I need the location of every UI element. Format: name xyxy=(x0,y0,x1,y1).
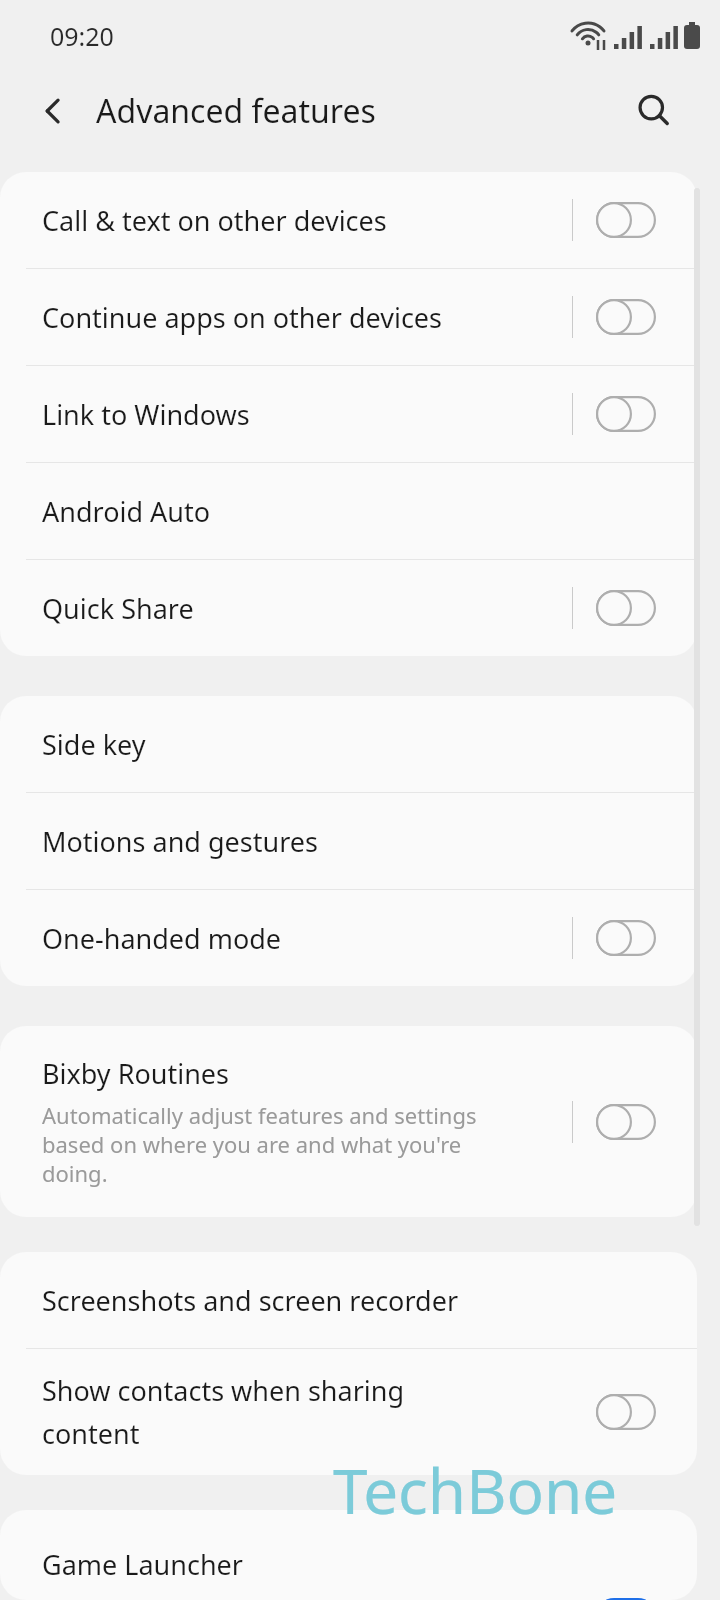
button[interactable]: Continue apps on other devices xyxy=(0,269,697,365)
button[interactable]: Toggle xyxy=(596,590,656,626)
button[interactable]: Game Launcher xyxy=(0,1510,697,1600)
staticText: Motions and gestures xyxy=(42,823,318,860)
button[interactable]: Quick Share xyxy=(0,560,697,656)
staticText: Quick Share xyxy=(42,590,194,627)
staticText: Link to Windows xyxy=(42,396,250,433)
staticText: content xyxy=(42,1415,140,1452)
button[interactable]: Link to Windows xyxy=(0,366,697,462)
button[interactable]: Bixby Routines xyxy=(0,1026,697,1217)
staticText: 09:20 xyxy=(50,19,114,53)
button[interactable]: Show contacts when sharing xyxy=(0,1349,697,1475)
button[interactable]: Motions and gestures xyxy=(0,793,697,889)
staticText: Bixby Routines xyxy=(42,1055,230,1092)
button[interactable]: Screenshots and screen recorder xyxy=(0,1252,697,1348)
staticText: Call & text on other devices xyxy=(42,202,387,239)
button[interactable]: Toggle xyxy=(596,202,656,238)
staticText: One-handed mode xyxy=(42,920,282,957)
staticText: Screenshots and screen recorder xyxy=(42,1282,459,1319)
staticText: Automatically adjust features and settin… xyxy=(42,1100,512,1188)
button[interactable]: Toggle xyxy=(596,299,656,335)
button[interactable]: Android Auto xyxy=(0,463,697,559)
staticText: Show contacts when sharing xyxy=(42,1372,405,1409)
staticText: TechBone xyxy=(333,1448,618,1532)
staticText: Advanced features xyxy=(96,89,376,133)
button[interactable]: Search xyxy=(628,85,680,137)
button[interactable]: One-handed mode xyxy=(0,890,697,986)
button[interactable]: Toggle xyxy=(596,1394,656,1430)
button[interactable]: Toggle xyxy=(596,920,656,956)
button[interactable]: Call & text on other devices xyxy=(0,172,697,268)
button[interactable]: Toggle xyxy=(596,1104,656,1140)
staticText: Continue apps on other devices xyxy=(42,299,443,336)
staticText: Side key xyxy=(42,726,146,763)
button[interactable]: Back xyxy=(26,83,82,139)
staticText: Game Launcher xyxy=(42,1546,243,1583)
button[interactable]: Side key xyxy=(0,696,697,792)
staticText: Android Auto xyxy=(42,493,211,530)
button[interactable]: Toggle xyxy=(596,396,656,432)
